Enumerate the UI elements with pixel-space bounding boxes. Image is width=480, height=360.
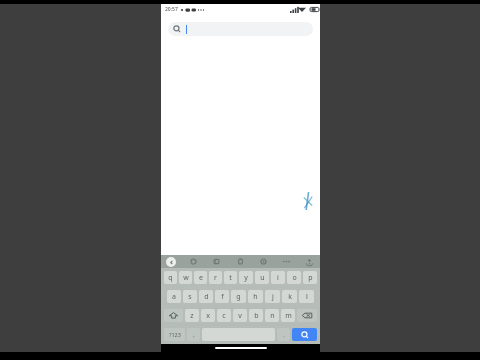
- button[interactable]: Search: [168, 22, 313, 36]
- button[interactable]: t: [224, 271, 237, 284]
- staticText: d: [204, 292, 209, 302]
- staticText: s: [188, 292, 192, 302]
- button[interactable]: u: [255, 271, 269, 284]
- button[interactable]: k: [282, 290, 297, 303]
- staticText: r: [214, 273, 217, 283]
- staticText: a: [172, 292, 176, 302]
- button[interactable]: More options: [281, 256, 292, 267]
- button[interactable]: b: [249, 309, 263, 322]
- staticText: j: [272, 292, 274, 302]
- button[interactable]: z: [185, 309, 199, 322]
- button[interactable]: o: [287, 271, 301, 284]
- button[interactable]: s: [183, 290, 197, 303]
- button[interactable]: GIF: [211, 256, 222, 267]
- staticText: 20:57: [165, 6, 178, 13]
- button[interactable]: i: [271, 271, 285, 284]
- button[interactable]: ,: [187, 328, 200, 341]
- button[interactable]: w: [179, 271, 192, 284]
- button[interactable]: h: [248, 290, 263, 303]
- button[interactable]: n: [265, 309, 279, 322]
- button[interactable]: y: [239, 271, 253, 284]
- staticText: p: [308, 273, 313, 283]
- staticText: o: [292, 273, 297, 283]
- button[interactable]: l: [299, 290, 314, 303]
- button[interactable]: x: [201, 309, 215, 322]
- button[interactable]: Search: [292, 328, 317, 341]
- other: Search: [173, 25, 181, 33]
- staticText: n: [270, 311, 275, 321]
- button[interactable]: f: [215, 290, 229, 303]
- staticText: h: [253, 292, 258, 302]
- button[interactable]: ?123: [164, 328, 185, 341]
- staticText: .: [283, 331, 285, 338]
- staticText: y: [244, 273, 248, 283]
- staticText: v: [238, 311, 242, 321]
- staticText: c: [222, 311, 226, 321]
- staticText: k: [288, 292, 292, 302]
- button[interactable]: Back: [166, 257, 176, 267]
- staticText: i: [277, 273, 279, 283]
- button[interactable]: d: [199, 290, 213, 303]
- button[interactable]: e: [194, 271, 207, 284]
- staticText: ?123: [169, 331, 181, 338]
- staticText: l: [306, 292, 308, 302]
- button[interactable]: Clipboard: [235, 256, 246, 267]
- button[interactable]: c: [217, 309, 231, 322]
- staticText: m: [285, 311, 292, 321]
- staticText: b: [254, 311, 259, 321]
- button[interactable]: m: [281, 309, 295, 322]
- staticText: x: [206, 311, 210, 321]
- staticText: z: [190, 311, 194, 321]
- button[interactable]: Backspace: [297, 309, 317, 322]
- staticText: w: [183, 273, 189, 283]
- button[interactable]: Settings: [258, 256, 269, 267]
- button[interactable]: Stickers: [188, 256, 199, 267]
- staticText: t: [229, 273, 232, 283]
- button[interactable]: q: [164, 271, 177, 284]
- staticText: ,: [193, 331, 195, 338]
- button[interactable]: r: [209, 271, 222, 284]
- staticText: f: [221, 292, 224, 302]
- staticText: e: [199, 273, 203, 283]
- button[interactable]: j: [265, 290, 280, 303]
- button[interactable]: g: [231, 290, 246, 303]
- button[interactable]: p: [303, 271, 317, 284]
- button[interactable]: a: [167, 290, 181, 303]
- button[interactable]: Shift: [164, 309, 183, 322]
- staticText: u: [260, 273, 265, 283]
- button[interactable]: v: [233, 309, 247, 322]
- staticText: g: [236, 292, 241, 302]
- staticText: q: [168, 273, 173, 283]
- button[interactable]: Voice input: [304, 256, 315, 267]
